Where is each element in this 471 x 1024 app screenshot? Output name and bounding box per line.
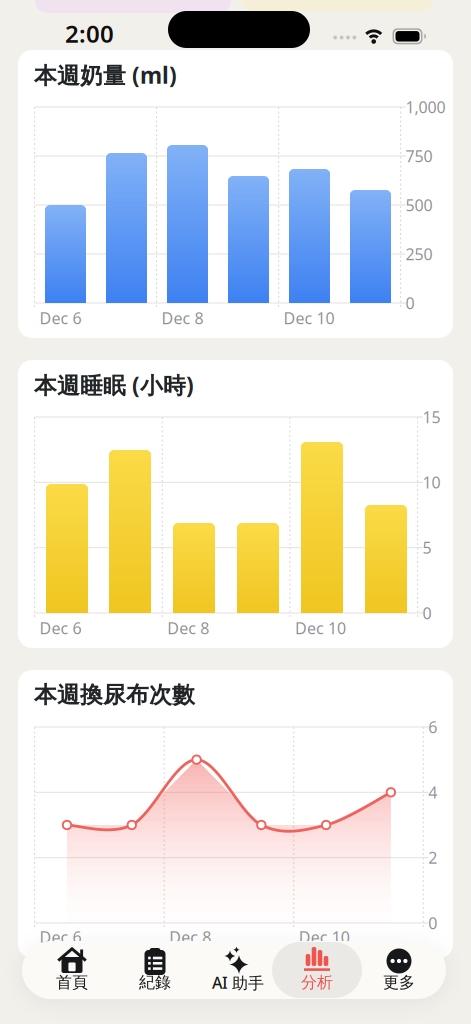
button[interactable]: 更多 <box>359 942 439 998</box>
staticText: Dec 8 <box>162 307 204 329</box>
staticText: 10 <box>423 472 441 493</box>
staticText: 分析 <box>301 973 333 992</box>
staticText: 首頁 <box>56 973 88 992</box>
staticText: 紀錄 <box>139 973 171 992</box>
staticText: 2 <box>428 847 437 868</box>
staticText: 本週奶量 (ml) <box>34 60 177 90</box>
staticText: 4 <box>428 782 437 803</box>
staticText: 500 <box>406 194 433 216</box>
staticText: 0 <box>423 602 432 624</box>
staticText: 750 <box>406 145 433 167</box>
button[interactable]: 首頁 <box>32 942 112 998</box>
staticText: Dec 6 <box>40 926 82 948</box>
staticText: Dec 8 <box>167 617 209 639</box>
staticText: Dec 10 <box>299 926 350 948</box>
staticText: Dec 6 <box>40 307 82 329</box>
button[interactable]: 紀錄 <box>115 942 195 998</box>
staticText: 1,000 <box>406 96 446 118</box>
staticText: Dec 10 <box>284 307 335 329</box>
staticText: 250 <box>406 243 433 265</box>
staticText: 0 <box>428 912 437 934</box>
staticText: Dec 6 <box>40 617 82 639</box>
staticText: 15 <box>423 406 441 428</box>
button[interactable]: AI 助手 <box>198 942 278 998</box>
staticText: Dec 10 <box>295 617 346 639</box>
staticText: 5 <box>423 537 432 558</box>
staticText: AI 助手 <box>212 972 264 993</box>
staticText: 本週換尿布次數 <box>34 681 195 709</box>
staticText: 更多 <box>383 973 415 992</box>
staticText: 0 <box>406 292 415 314</box>
button[interactable]: 分析 <box>277 942 357 998</box>
staticText: Dec 8 <box>169 926 211 948</box>
staticText: 2:00 <box>65 18 114 49</box>
staticText: 6 <box>428 716 437 738</box>
staticText: 本週睡眠 (小時) <box>34 370 194 400</box>
